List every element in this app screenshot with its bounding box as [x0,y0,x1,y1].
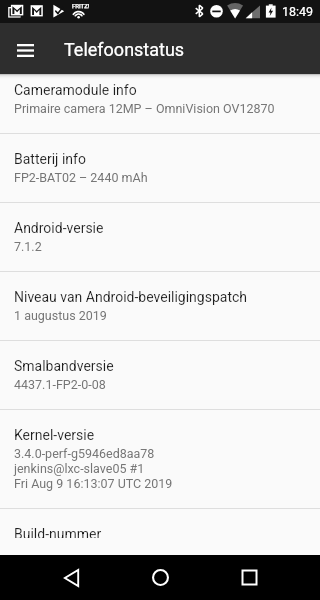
button[interactable]: Build-nummer [0,509,320,555]
staticText: 18:49 [282,4,314,19]
staticText: Build-nummer [14,526,102,538]
staticText: FRITZ! [72,2,90,9]
button[interactable]: Android-versie [0,203,320,272]
button[interactable]: Back [53,560,89,596]
staticText: Niveau van Android-beveiligingspatch [14,289,248,305]
button[interactable]: Home [142,559,178,595]
staticText: 1 augustus 2019 [14,308,107,323]
button[interactable]: Cameramodule info [0,74,320,134]
staticText: Smalbandversie [14,358,114,374]
button[interactable]: Kernel-versie [0,410,320,509]
staticText: Cameramodule info [14,82,137,98]
staticText: Batterij info [14,151,86,167]
staticText: Kernel-versie [14,427,95,443]
button[interactable]: Niveau van Android-beveiligingspatch [0,272,320,341]
staticText: Primaire camera 12MP – OmniVision OV1287… [14,101,275,116]
button[interactable]: Smalbandversie [0,341,320,410]
button[interactable]: Batterij info [0,134,320,203]
staticText: 3.4.0-perf-g5946ed8aa78 jenkins@lxc-slav… [14,446,173,491]
staticText: 4437.1-FP2-0-08 [14,377,106,392]
button[interactable]: Recent apps [231,559,267,595]
staticText: 7.1.2 [14,239,42,254]
button[interactable]: Open navigation menu [8,33,42,67]
staticText: Android-versie [14,220,104,236]
staticText: FP2-BAT02 – 2440 mAh [14,170,148,185]
staticText: Telefoonstatus [64,39,185,60]
